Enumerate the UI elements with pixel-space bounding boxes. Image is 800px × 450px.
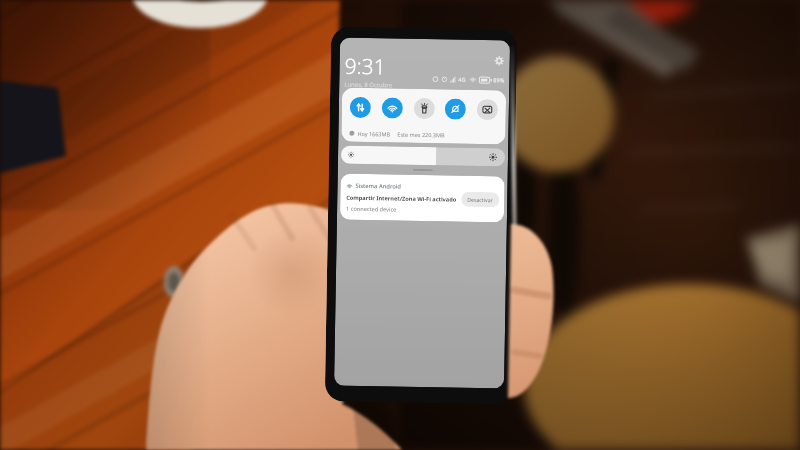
button[interactable]: Desactivar <box>461 192 499 207</box>
button[interactable]: Mobile data <box>350 97 371 118</box>
staticText: Compartir Internet/Zona Wi-Fi activado <box>346 194 456 204</box>
button[interactable]: Silent mode <box>445 98 466 120</box>
button[interactable]: Sistema Android <box>340 174 505 222</box>
staticText: Desactivar <box>467 196 493 203</box>
button[interactable]: Cast <box>477 99 498 120</box>
button[interactable]: Wi-Fi <box>382 97 403 119</box>
staticText: Hoy 1663MB <box>357 130 390 137</box>
button[interactable]: Flashlight <box>414 98 435 119</box>
button[interactable]: Settings <box>495 56 504 65</box>
staticText: Lunes, 8 Octubre <box>344 81 392 88</box>
staticText: 1 connected device <box>346 205 397 214</box>
staticText: 9:31 <box>344 52 387 81</box>
staticText: Este mes 220.3MB <box>397 131 445 138</box>
staticText: 4G <box>458 76 466 83</box>
staticText: 89% <box>493 76 504 83</box>
staticText: Sistema Android <box>355 182 401 191</box>
button[interactable]: Brightness <box>341 146 505 166</box>
